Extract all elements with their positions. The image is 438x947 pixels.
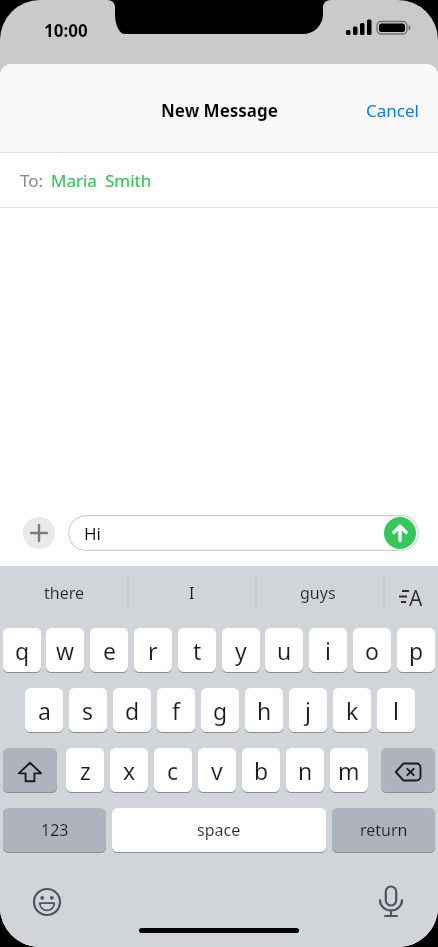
staticText: 10:00 <box>44 19 88 42</box>
staticText: there <box>44 582 85 604</box>
button[interactable]: h <box>245 688 283 732</box>
staticText: Cancel <box>366 99 419 122</box>
staticText: w <box>56 635 75 666</box>
button[interactable]: y <box>222 628 260 672</box>
staticText: A <box>409 584 423 613</box>
button[interactable]: z <box>66 748 104 792</box>
button[interactable]: g <box>201 688 239 732</box>
staticText: f <box>172 695 180 726</box>
staticText: b <box>254 755 269 786</box>
staticText: n <box>298 755 313 786</box>
button[interactable]: s <box>69 688 107 732</box>
button[interactable]: Cancel <box>366 99 419 122</box>
button[interactable]: I <box>128 566 256 620</box>
button[interactable]: m <box>330 748 368 792</box>
button[interactable]: there <box>0 566 146 620</box>
staticText: l <box>393 695 399 726</box>
button[interactable]: Hi <box>68 515 419 551</box>
staticText: Maria <box>51 169 97 192</box>
staticText: i <box>325 635 331 666</box>
staticText: New Message <box>161 99 278 122</box>
button[interactable]: o <box>353 628 391 672</box>
button[interactable]: l <box>377 688 415 732</box>
button[interactable]: w <box>46 628 84 672</box>
staticText: 123 <box>41 819 69 841</box>
button[interactable]: f <box>157 688 195 732</box>
button[interactable]: t <box>178 628 216 672</box>
staticText: u <box>277 635 292 666</box>
button[interactable]: q <box>3 628 41 672</box>
button[interactable]: i <box>309 628 347 672</box>
button[interactable] <box>27 882 67 922</box>
button[interactable]: r <box>134 628 172 672</box>
staticText: Smith <box>105 169 152 192</box>
button[interactable]: v <box>198 748 236 792</box>
staticText: return <box>360 819 408 841</box>
button[interactable]: c <box>154 748 192 792</box>
button[interactable]: 123 <box>3 808 106 852</box>
button[interactable]: e <box>90 628 128 672</box>
button[interactable]: To: <box>0 153 438 207</box>
staticText: guys <box>300 582 336 604</box>
button[interactable] <box>381 748 435 792</box>
staticText: j <box>305 695 311 726</box>
staticText: c <box>167 755 179 786</box>
staticText: g <box>213 695 228 726</box>
button[interactable]: a <box>25 688 63 732</box>
button[interactable]: j <box>289 688 327 732</box>
button[interactable]: x <box>110 748 148 792</box>
staticText: z <box>80 755 91 786</box>
staticText: o <box>365 635 379 666</box>
staticText: t <box>193 635 202 666</box>
button[interactable]: u <box>265 628 303 672</box>
staticText: m <box>338 755 360 786</box>
button[interactable]: guys <box>256 566 384 620</box>
button[interactable] <box>371 882 411 922</box>
staticText: e <box>103 635 116 666</box>
staticText: h <box>257 695 272 726</box>
button[interactable] <box>384 517 416 549</box>
button[interactable] <box>23 517 55 549</box>
staticText: d <box>125 695 140 726</box>
staticText: v <box>211 755 223 786</box>
staticText: s <box>82 695 94 726</box>
staticText: x <box>123 755 136 786</box>
button[interactable] <box>3 748 57 792</box>
button[interactable]: p <box>397 628 435 672</box>
staticText: space <box>197 819 241 841</box>
staticText: q <box>15 635 30 666</box>
button[interactable]: n <box>286 748 324 792</box>
staticText: k <box>346 695 359 726</box>
staticText: I <box>189 582 195 604</box>
staticText: y <box>235 635 247 666</box>
staticText: p <box>409 635 424 666</box>
button[interactable]: return <box>332 808 435 852</box>
button[interactable]: d <box>113 688 151 732</box>
staticText: Hi <box>84 522 101 545</box>
staticText: r <box>148 635 158 666</box>
staticText: a <box>38 695 51 726</box>
staticText: To: <box>20 169 44 192</box>
button[interactable]: k <box>333 688 371 732</box>
button[interactable]: space <box>112 808 326 852</box>
button[interactable]: b <box>242 748 280 792</box>
